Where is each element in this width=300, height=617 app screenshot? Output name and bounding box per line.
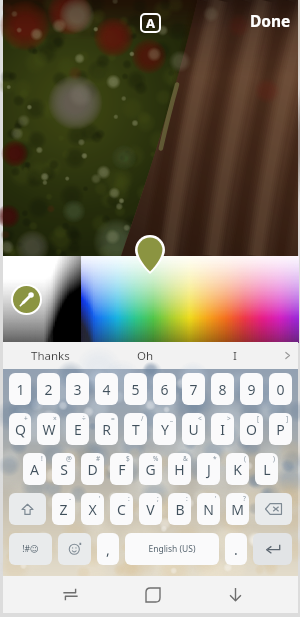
button[interactable]: T	[124, 413, 147, 445]
staticText: U	[188, 420, 199, 439]
staticText: L	[263, 460, 271, 479]
button[interactable]: !#☺	[9, 533, 52, 565]
button[interactable]: P	[269, 413, 292, 445]
button[interactable]: O	[240, 413, 263, 445]
staticText: 3	[73, 380, 82, 399]
button[interactable]: R	[95, 413, 118, 445]
button[interactable]: K	[226, 453, 249, 485]
staticText: H	[174, 460, 185, 479]
staticText: T	[132, 420, 140, 439]
staticText: S	[60, 460, 68, 479]
button[interactable]: Y	[153, 413, 176, 445]
button[interactable]: Enter	[253, 533, 292, 565]
staticText: J	[207, 460, 211, 479]
staticText: C	[117, 500, 126, 519]
button[interactable]: 8	[211, 373, 234, 405]
staticText: English (US)	[148, 543, 196, 555]
button[interactable]: 4	[95, 373, 118, 405]
button[interactable]: Q	[9, 413, 31, 445]
button[interactable]: Thanks	[3, 342, 98, 369]
button[interactable]: 5	[124, 373, 147, 405]
staticText: Y	[161, 420, 169, 439]
button[interactable]: F	[110, 453, 133, 485]
button[interactable]: English (US)	[125, 533, 219, 565]
staticText: =	[111, 414, 115, 423]
button[interactable]: Z	[52, 493, 75, 525]
staticText: 4	[102, 380, 111, 399]
staticText: E	[74, 420, 82, 439]
button[interactable]: Oh	[98, 342, 193, 369]
button[interactable]: 2	[37, 373, 60, 405]
button[interactable]: Text style	[140, 13, 161, 33]
staticText: /	[141, 414, 144, 423]
staticText: O	[246, 420, 257, 439]
staticText: 7	[189, 380, 198, 399]
button[interactable]: I	[211, 413, 234, 445]
button[interactable]: V	[139, 493, 162, 525]
button[interactable]: N	[197, 493, 220, 525]
button[interactable]: X	[81, 493, 104, 525]
staticText: P	[276, 420, 285, 439]
button[interactable]: 6	[153, 373, 176, 405]
staticText: 0	[276, 380, 285, 399]
button[interactable]: C	[110, 493, 133, 525]
staticText: 5	[131, 380, 140, 399]
button[interactable]: ,	[97, 533, 119, 565]
staticText: :	[186, 494, 188, 503]
staticText: G	[145, 460, 156, 479]
button[interactable]: Shift	[9, 493, 46, 525]
staticText: 6	[160, 380, 169, 399]
button[interactable]: I	[193, 342, 276, 369]
button[interactable]: A	[23, 453, 46, 485]
staticText: #	[96, 454, 101, 463]
button[interactable]: S	[52, 453, 75, 485]
button[interactable]: 9	[240, 373, 263, 405]
staticText: Done	[250, 10, 291, 31]
staticText: 2	[44, 380, 53, 399]
button[interactable]: 7	[182, 373, 205, 405]
staticText: $	[126, 454, 130, 463]
button[interactable]: W	[37, 413, 60, 445]
staticText: Oh	[137, 348, 154, 364]
button[interactable]: Done	[250, 10, 291, 31]
button[interactable]: H	[168, 453, 191, 485]
staticText: W	[42, 420, 56, 439]
staticText: -	[69, 494, 72, 503]
button[interactable]: Backspace	[255, 493, 292, 525]
button[interactable]: Hide keyboard	[194, 576, 277, 613]
button[interactable]: L	[255, 453, 278, 485]
button[interactable]: Emoji	[58, 533, 91, 565]
staticText: M	[231, 500, 244, 519]
staticText: I	[220, 420, 225, 439]
staticText: Z	[59, 500, 68, 519]
button[interactable]: Switch keyboard	[29, 576, 111, 613]
staticText: [	[257, 414, 260, 423]
button[interactable]: E	[66, 413, 89, 445]
staticText: !	[41, 454, 43, 463]
button[interactable]: Recent apps	[111, 576, 194, 613]
staticText: '	[99, 494, 101, 503]
staticText: ;	[157, 494, 159, 503]
staticText: (	[244, 454, 246, 463]
button[interactable]: 3	[66, 373, 89, 405]
staticText: Q	[15, 420, 26, 439]
staticText: N	[203, 500, 214, 519]
staticText: I	[233, 348, 237, 364]
button[interactable]: Eyedropper	[13, 286, 40, 313]
button[interactable]: G	[139, 453, 162, 485]
staticText: .	[234, 540, 238, 559]
staticText: ÷	[82, 414, 86, 423]
button[interactable]: M	[226, 493, 249, 525]
button[interactable]: 1	[9, 373, 31, 405]
button[interactable]: B	[168, 493, 191, 525]
staticText: &	[183, 454, 188, 463]
staticText: A	[30, 460, 39, 479]
button[interactable]: 0	[269, 373, 292, 405]
staticText: A	[146, 14, 155, 32]
button[interactable]: J	[197, 453, 220, 485]
button[interactable]: U	[182, 413, 205, 445]
button[interactable]: .	[225, 533, 247, 565]
staticText: V	[146, 500, 155, 519]
button[interactable]: More suggestions	[276, 342, 298, 369]
button[interactable]: D	[81, 453, 104, 485]
